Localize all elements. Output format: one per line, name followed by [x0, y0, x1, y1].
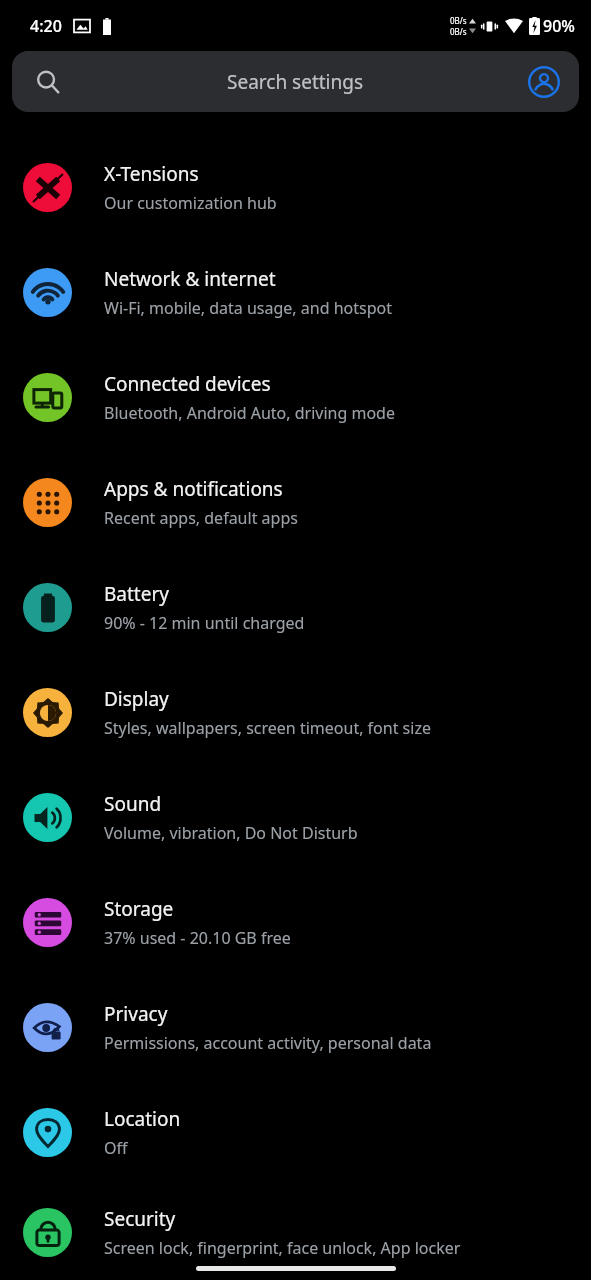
staticText: Network & internet	[104, 266, 276, 292]
button[interactable]: Location	[0, 1080, 591, 1185]
button[interactable]: X-Tensions	[0, 135, 591, 240]
staticText: Location	[104, 1106, 181, 1132]
staticText: 37% used - 20.10 GB free	[104, 927, 291, 949]
staticText: 0B/s	[450, 26, 467, 37]
staticText: Recent apps, default apps	[104, 507, 298, 529]
staticText: Bluetooth, Android Auto, driving mode	[104, 402, 395, 424]
staticText: Sound	[104, 791, 162, 817]
button[interactable]: Connected devices	[0, 345, 591, 450]
staticText: Battery	[104, 581, 169, 607]
button[interactable]: Network & internet	[0, 240, 591, 345]
button[interactable]: Privacy	[0, 975, 591, 1080]
staticText: Off	[104, 1137, 128, 1159]
staticText: 90% - 12 min until charged	[104, 612, 305, 634]
staticText: Display	[104, 686, 169, 712]
button[interactable]: Battery	[0, 555, 591, 660]
staticText: 4:20	[30, 15, 62, 37]
staticText: 90%	[543, 15, 575, 37]
staticText: Permissions, account activity, personal …	[104, 1032, 432, 1054]
button[interactable]: Account	[527, 65, 561, 99]
staticText: Security	[104, 1206, 176, 1232]
button[interactable]: Display	[0, 660, 591, 765]
staticText: 0B/s	[450, 15, 467, 26]
staticText: Our customization hub	[104, 192, 277, 214]
staticText: Screen lock, fingerprint, face unlock, A…	[104, 1237, 461, 1259]
button[interactable]: Search settings	[12, 51, 579, 112]
staticText: Styles, wallpapers, screen timeout, font…	[104, 717, 431, 739]
staticText: Search settings	[227, 69, 364, 95]
staticText: Wi-Fi, mobile, data usage, and hotspot	[104, 297, 392, 319]
button[interactable]: Apps & notifications	[0, 450, 591, 555]
staticText: Connected devices	[104, 371, 271, 397]
button[interactable]: Security	[0, 1185, 591, 1280]
staticText: Apps & notifications	[104, 476, 283, 502]
staticText: Privacy	[104, 1001, 168, 1027]
button[interactable]: Sound	[0, 765, 591, 870]
button[interactable]: Storage	[0, 870, 591, 975]
staticText: X-Tensions	[104, 161, 199, 187]
staticText: Storage	[104, 896, 174, 922]
staticText: Volume, vibration, Do Not Disturb	[104, 822, 358, 844]
